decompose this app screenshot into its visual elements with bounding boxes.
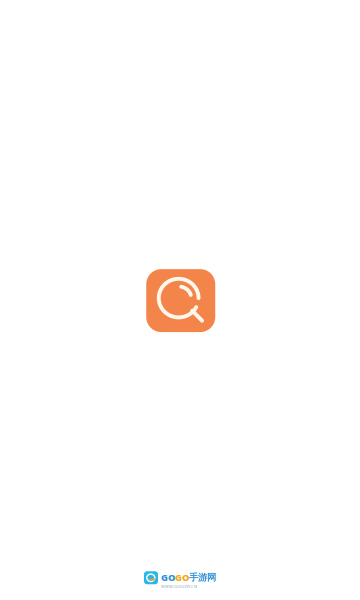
staticText: GO	[175, 571, 189, 584]
staticText: 手游网	[189, 572, 216, 583]
staticText: GO	[161, 571, 175, 584]
staticText: WWW.GOGOSY.CN	[161, 584, 197, 589]
